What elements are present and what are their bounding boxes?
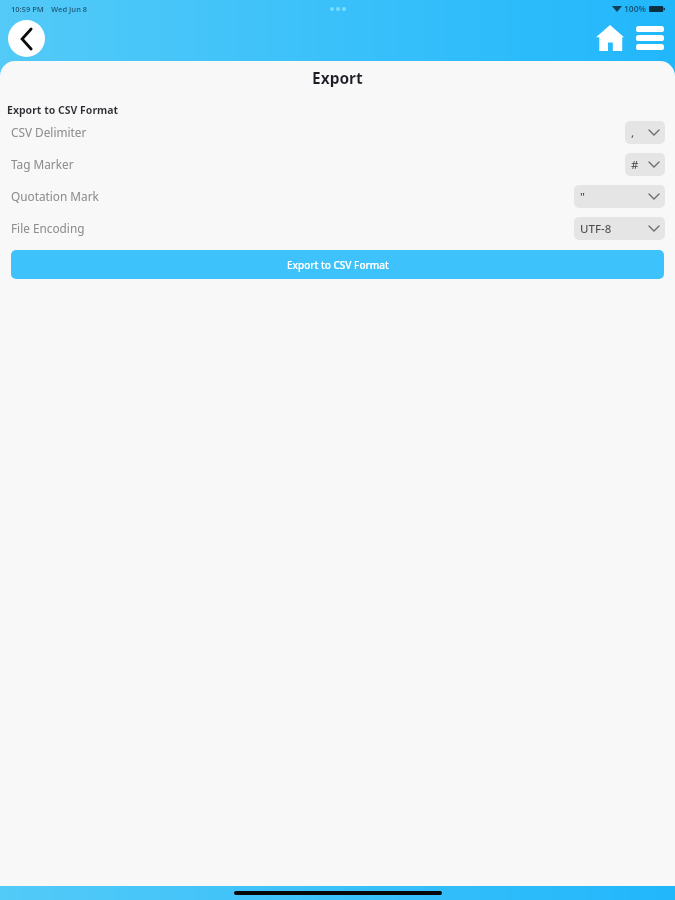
button[interactable]: Back	[8, 20, 45, 57]
button[interactable]: Home	[593, 21, 627, 55]
staticText: Wed Jun 8	[51, 4, 88, 14]
staticText: 10:59 PM	[11, 4, 44, 14]
staticText: Export	[312, 67, 363, 87]
button[interactable]: Menu	[633, 21, 667, 55]
staticText: Export to CSV Format	[7, 103, 119, 117]
staticText: "	[580, 189, 585, 205]
staticText: Tag Marker	[11, 156, 74, 172]
button[interactable]: Export to CSV Format	[11, 250, 664, 279]
button[interactable]: Tag Marker	[0, 148, 675, 180]
staticText: #	[631, 157, 639, 173]
staticText: Export to CSV Format	[287, 258, 389, 272]
button[interactable]: Quotation Mark	[0, 180, 675, 212]
staticText: ,	[631, 125, 635, 141]
staticText: CSV Delimiter	[11, 124, 87, 140]
staticText: UTF-8	[580, 221, 612, 237]
button[interactable]: File Encoding	[0, 212, 675, 244]
button[interactable]: CSV Delimiter	[0, 116, 675, 148]
staticText: Quotation Mark	[11, 188, 99, 204]
staticText: File Encoding	[11, 220, 85, 236]
staticText: 100%	[624, 3, 647, 15]
